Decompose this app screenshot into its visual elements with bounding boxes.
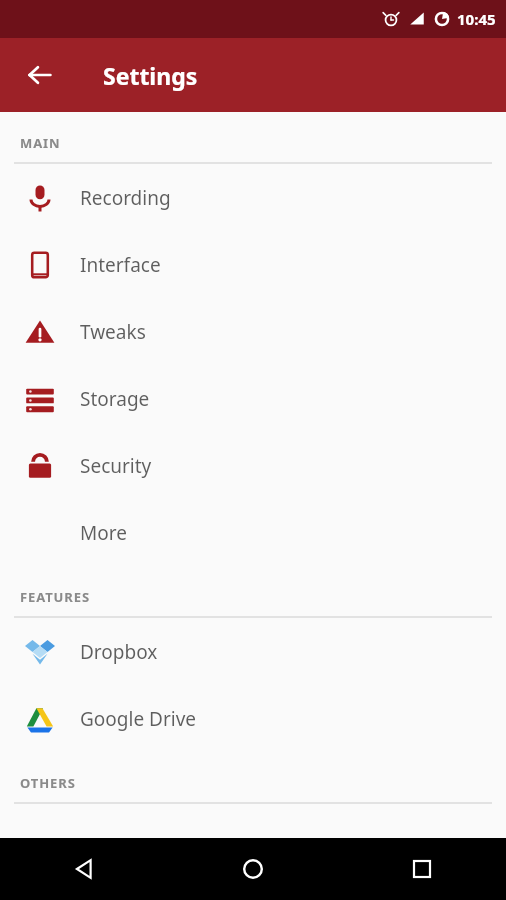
staticText: FEATURES xyxy=(20,588,91,606)
button[interactable]: Dropbox xyxy=(0,618,506,685)
staticText: Storage xyxy=(80,386,150,412)
button[interactable]: Recording xyxy=(0,164,506,231)
button[interactable]: Google Drive xyxy=(0,685,506,752)
staticText: Settings xyxy=(103,60,198,91)
button[interactable]: Interface xyxy=(0,231,506,298)
button[interactable]: Storage xyxy=(0,365,506,432)
staticText: Security xyxy=(80,453,152,479)
button[interactable]: Back xyxy=(16,51,64,99)
staticText: Interface xyxy=(80,252,161,278)
staticText: More xyxy=(80,520,127,546)
staticText: OTHERS xyxy=(20,774,76,792)
button[interactable]: Home xyxy=(168,838,337,900)
button[interactable]: More xyxy=(0,499,506,566)
button[interactable]: Security xyxy=(0,432,506,499)
staticText: 10:45 xyxy=(457,9,496,29)
button[interactable]: Tweaks xyxy=(0,298,506,365)
staticText: Google Drive xyxy=(80,706,197,732)
staticText: Tweaks xyxy=(80,319,146,345)
staticText: MAIN xyxy=(20,134,61,152)
button[interactable]: Back xyxy=(0,838,168,900)
staticText: Recording xyxy=(80,185,171,211)
staticText: Dropbox xyxy=(80,639,158,665)
button[interactable]: Recent apps xyxy=(337,838,506,900)
